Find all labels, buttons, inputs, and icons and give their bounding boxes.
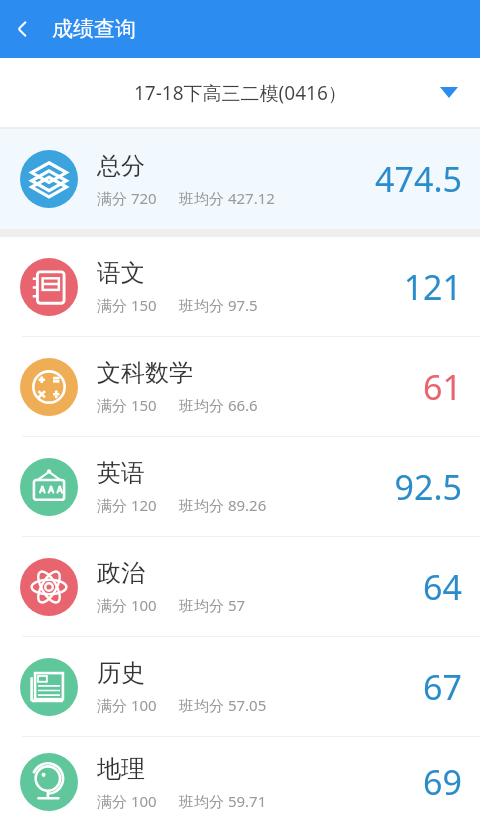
- staticText: 班均分 57.05: [179, 695, 267, 715]
- staticText: 满分 120: [97, 495, 157, 515]
- staticText: 满分 100: [97, 695, 157, 715]
- staticText: 67: [423, 664, 462, 710]
- button[interactable]: Back: [0, 6, 46, 52]
- staticText: 满分 150: [97, 295, 157, 315]
- staticText: 成绩查询: [52, 16, 136, 42]
- staticText: 满分 150: [97, 395, 157, 415]
- button[interactable]: 英语: [0, 437, 480, 536]
- staticText: 17-18下高三二模(0416）: [134, 80, 347, 106]
- staticText: 总分: [97, 151, 145, 181]
- staticText: 满分 100: [97, 595, 157, 615]
- staticText: 语文: [97, 258, 145, 288]
- staticText: 班均分 89.26: [179, 495, 267, 515]
- staticText: 64: [423, 564, 462, 610]
- button[interactable]: 语文: [0, 237, 480, 336]
- staticText: 满分 100: [97, 791, 157, 811]
- staticText: 121: [403, 264, 462, 310]
- button[interactable]: 总分: [0, 129, 480, 229]
- button[interactable]: 历史: [0, 637, 480, 736]
- staticText: 历史: [97, 658, 145, 688]
- staticText: 政治: [97, 558, 145, 588]
- button[interactable]: 地理: [0, 737, 480, 827]
- button[interactable]: 文科数学: [0, 337, 480, 436]
- staticText: 班均分 427.12: [179, 188, 275, 208]
- staticText: 69: [423, 759, 462, 805]
- staticText: 班均分 57: [179, 595, 246, 615]
- staticText: 班均分 66.6: [179, 395, 258, 415]
- staticText: 474.5: [375, 156, 462, 202]
- staticText: 班均分 97.5: [179, 295, 258, 315]
- button[interactable]: 17-18下高三二模(0416）: [0, 58, 480, 127]
- staticText: 地理: [97, 754, 145, 784]
- staticText: 满分 720: [97, 188, 157, 208]
- button[interactable]: 政治: [0, 537, 480, 636]
- staticText: 英语: [97, 458, 145, 488]
- staticText: 92.5: [394, 464, 462, 510]
- staticText: 61: [423, 364, 462, 410]
- staticText: 班均分 59.71: [179, 791, 267, 811]
- staticText: 文科数学: [97, 358, 193, 388]
